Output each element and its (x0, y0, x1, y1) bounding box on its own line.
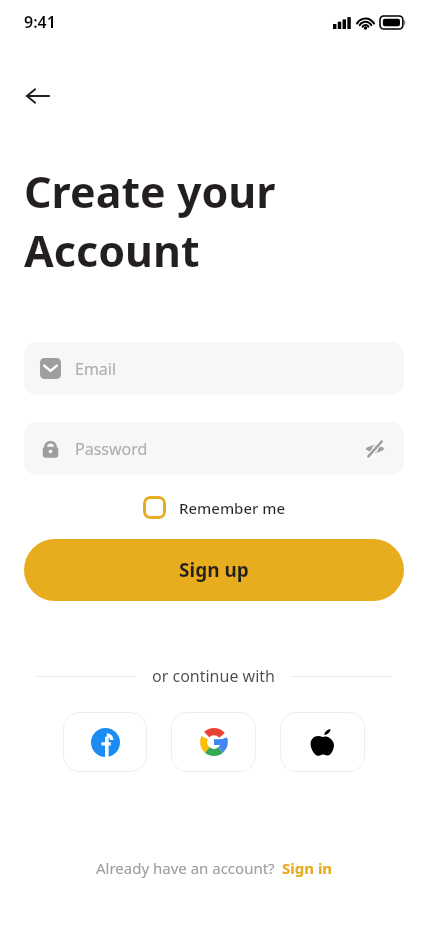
staticText: Remember me (179, 498, 286, 518)
staticText: Password (75, 438, 362, 460)
button[interactable]: Sign in (282, 858, 333, 878)
staticText: Email (75, 358, 388, 380)
staticText: Sign up (179, 557, 249, 583)
button[interactable]: Sign up with Google (171, 712, 256, 772)
staticText: Create your (24, 162, 276, 221)
staticText: Already have an account? (96, 858, 275, 878)
button[interactable]: Show password (362, 436, 388, 462)
button[interactable]: Sign up with Facebook (63, 712, 147, 772)
staticText: Account (24, 221, 200, 280)
button[interactable]: Back (14, 72, 62, 120)
staticText: Sign in (282, 858, 333, 878)
button[interactable]: Sign up (24, 539, 404, 601)
button[interactable]: Sign up with Apple (280, 712, 365, 772)
button[interactable]: Email (24, 342, 404, 395)
button[interactable]: Remember me (137, 492, 292, 523)
staticText: or continue with (152, 665, 275, 687)
button[interactable]: Password (24, 422, 404, 475)
staticText: 9:41 (24, 11, 56, 33)
